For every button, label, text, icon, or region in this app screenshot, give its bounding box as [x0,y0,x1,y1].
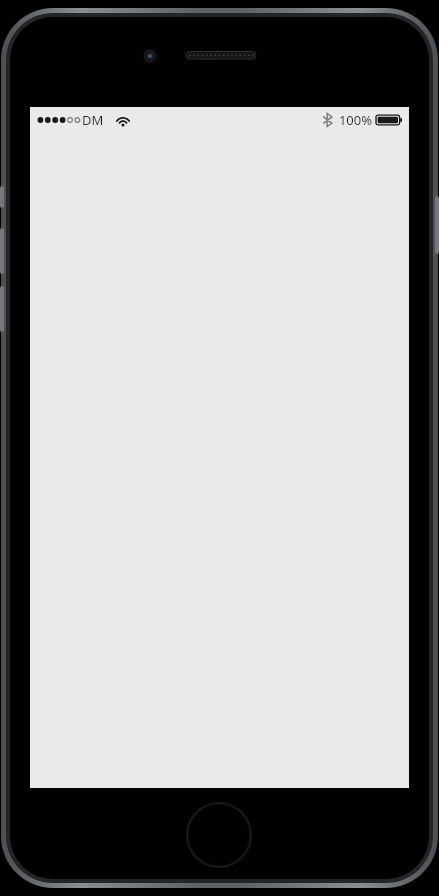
staticText: DM [82,111,104,129]
staticText: 100% [338,111,372,129]
